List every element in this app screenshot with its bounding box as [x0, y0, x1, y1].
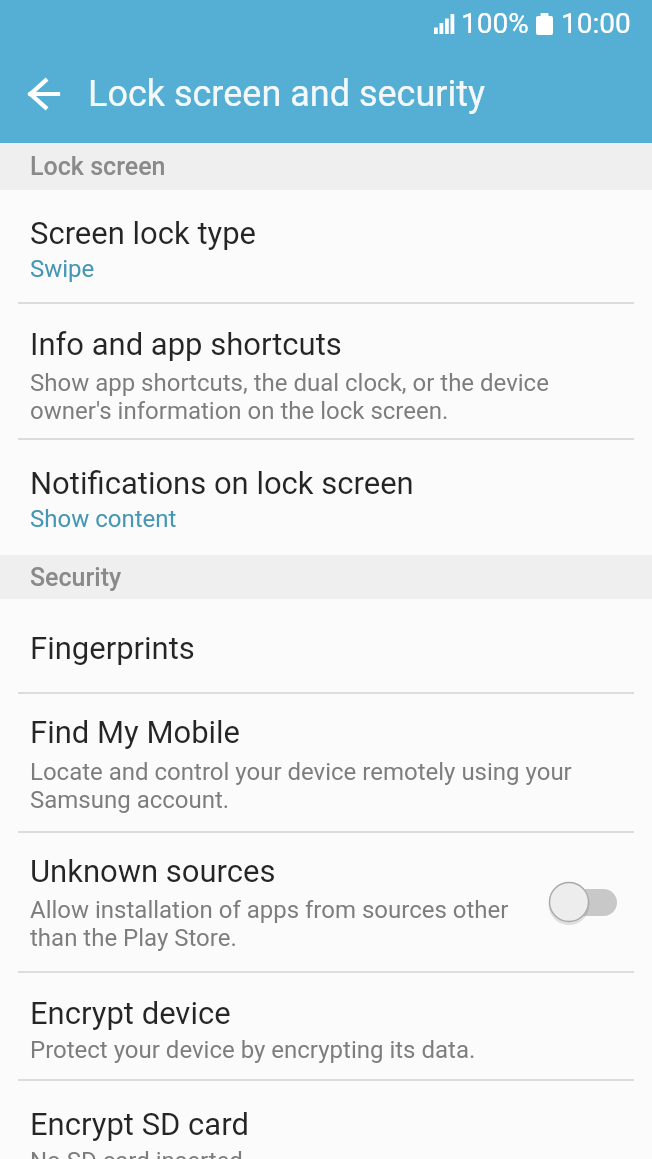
staticText: Encrypt SD card — [30, 1106, 249, 1142]
staticText: Unknown sources — [30, 853, 276, 889]
staticText: No SD card inserted — [30, 1147, 243, 1159]
button[interactable] — [550, 880, 617, 924]
staticText: 10:00 — [561, 7, 631, 40]
staticText: 100% — [461, 7, 529, 40]
button[interactable]: Fingerprints — [0, 599, 652, 692]
staticText: Show app shortcuts, the dual clock, or t… — [30, 369, 549, 425]
button[interactable]: Find My Mobile — [0, 694, 652, 831]
staticText: Lock screen — [30, 152, 166, 181]
button[interactable]: Screen lock type — [0, 190, 652, 302]
button[interactable]: Info and app shortcuts — [0, 304, 652, 438]
staticText: Screen lock type — [30, 215, 257, 251]
staticText: Allow installation of apps from sources … — [30, 896, 509, 952]
staticText: Encrypt device — [30, 995, 231, 1031]
staticText: Find My Mobile — [30, 714, 241, 750]
staticText: Show content — [30, 505, 177, 533]
staticText: Swipe — [30, 255, 95, 283]
staticText: Notifications on lock screen — [30, 465, 414, 501]
staticText: Protect your device by encrypting its da… — [30, 1036, 476, 1064]
staticText: Lock screen and security — [88, 73, 486, 115]
staticText: Fingerprints — [30, 630, 195, 666]
staticText: Locate and control your device remotely … — [30, 758, 572, 814]
button[interactable]: Encrypt device — [0, 973, 652, 1079]
button[interactable]: Notifications on lock screen — [0, 440, 652, 555]
button[interactable] — [0, 44, 88, 143]
staticText: Security — [30, 563, 122, 592]
staticText: Info and app shortcuts — [30, 326, 342, 362]
button[interactable]: Encrypt SD card — [0, 1081, 652, 1159]
button[interactable]: Unknown sources — [0, 833, 652, 971]
